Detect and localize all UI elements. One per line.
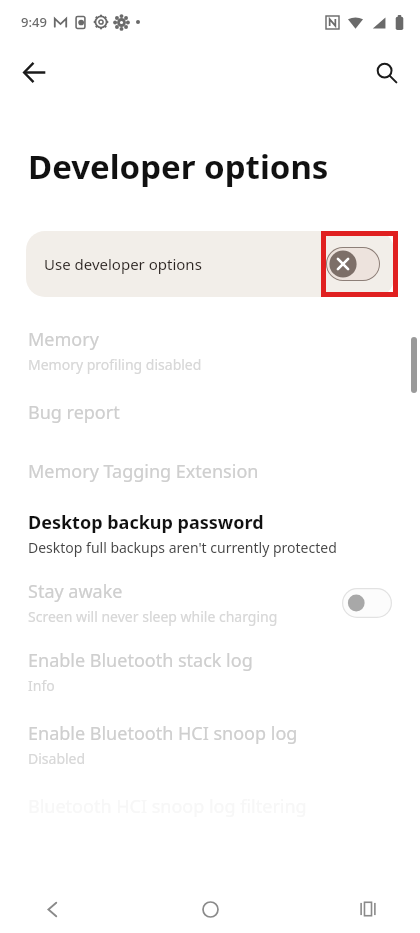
button[interactable]: Bug report: [28, 400, 392, 425]
staticText: 9:49: [21, 13, 47, 31]
staticText: Memory: [28, 327, 99, 352]
button[interactable]: Enable Bluetooth HCI snoop log: [28, 721, 392, 768]
button[interactable]: Memory: [28, 327, 392, 374]
staticText: Memory Tagging Extension: [28, 459, 259, 484]
staticText: Info: [28, 676, 55, 695]
button[interactable]: Search: [362, 48, 410, 96]
button[interactable]: Back: [10, 48, 58, 96]
staticText: Enable Bluetooth stack log: [28, 648, 253, 673]
staticText: Desktop backup password: [28, 510, 264, 535]
button[interactable]: Use developer options toggle: [326, 247, 380, 281]
button[interactable]: Desktop backup password: [28, 510, 392, 557]
button[interactable]: Memory Tagging Extension: [28, 459, 392, 484]
staticText: Desktop full backups aren't currently pr…: [28, 538, 337, 557]
button[interactable]: Home: [182, 885, 238, 933]
button[interactable]: Stay awake toggle: [342, 588, 392, 618]
staticText: Enable Bluetooth HCI snoop log: [28, 721, 298, 746]
staticText: Screen will never sleep while charging: [28, 607, 278, 626]
staticText: Use developer options: [44, 254, 202, 274]
button[interactable]: Enable Bluetooth stack log: [28, 648, 392, 695]
staticText: Stay awake: [28, 579, 123, 604]
staticText: Memory profiling disabled: [28, 355, 202, 374]
button[interactable]: Stay awake: [28, 579, 392, 626]
staticText: Bug report: [28, 400, 120, 425]
button[interactable]: Use developer options: [26, 231, 394, 297]
button[interactable]: Back: [24, 885, 80, 933]
button[interactable]: Recent apps: [340, 885, 396, 933]
staticText: Developer options: [28, 144, 329, 189]
staticText: Disabled: [28, 749, 86, 768]
